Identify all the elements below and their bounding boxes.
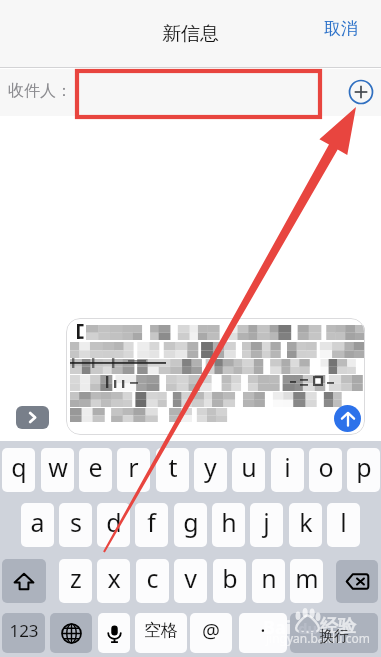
button[interactable]: y — [194, 448, 227, 492]
button[interactable]: i — [271, 448, 304, 492]
button[interactable]: u — [232, 448, 265, 492]
button[interactable]: g — [174, 503, 207, 547]
staticText: 新信息 — [162, 22, 219, 46]
staticText: 空格 — [144, 620, 178, 641]
staticText: 取消 — [324, 18, 358, 39]
staticText: i — [284, 450, 291, 484]
staticText: 123 — [9, 619, 39, 642]
staticText: du — [298, 618, 318, 638]
button[interactable]: r — [117, 448, 150, 492]
button[interactable]: z — [59, 559, 92, 603]
button[interactable]: x — [97, 559, 130, 603]
button[interactable]: t — [156, 448, 189, 492]
staticText: k — [299, 505, 313, 539]
staticText: g — [183, 505, 199, 539]
staticText: y — [204, 450, 217, 484]
button[interactable]: 取消 — [312, 12, 370, 45]
staticText: w — [48, 450, 68, 484]
staticText: s — [70, 505, 82, 539]
button[interactable]: @ — [190, 613, 232, 653]
button[interactable]: j — [250, 503, 283, 547]
button[interactable]: Add contact — [348, 79, 374, 105]
button[interactable]: d — [97, 503, 130, 547]
staticText: v — [184, 561, 197, 595]
button[interactable]: s — [59, 503, 92, 547]
staticText: n — [261, 561, 277, 595]
button[interactable]: c — [136, 559, 169, 603]
staticText: f — [147, 505, 156, 539]
staticText: m — [295, 561, 319, 595]
staticText: x — [107, 561, 121, 595]
button[interactable]: k — [289, 503, 322, 547]
button[interactable]: q — [2, 448, 35, 492]
button[interactable]: Switch keyboard — [50, 613, 92, 653]
staticText: c — [146, 561, 159, 595]
staticText: q — [11, 450, 27, 484]
button[interactable]: Backspace — [336, 560, 378, 603]
staticText: p — [356, 450, 372, 484]
button[interactable]: e — [79, 448, 112, 492]
button[interactable]: · — [239, 613, 287, 653]
button[interactable]: w — [41, 448, 74, 492]
staticText: a — [30, 505, 45, 539]
button[interactable]: m — [290, 559, 323, 603]
button[interactable]: b — [213, 559, 246, 603]
button[interactable]: Shift — [2, 559, 46, 603]
button[interactable]: a — [21, 503, 54, 547]
button[interactable]: l — [327, 503, 360, 547]
button[interactable]: n — [252, 559, 285, 603]
button[interactable]: o — [309, 448, 342, 492]
staticText: t — [168, 450, 178, 484]
staticText: j — [263, 505, 270, 539]
button[interactable]: Send — [334, 405, 361, 432]
staticText: 换行 — [319, 627, 349, 646]
button[interactable]: 空格 — [135, 613, 187, 653]
button[interactable]: v — [174, 559, 207, 603]
staticText: jingyan.baidu.com — [266, 630, 370, 646]
staticText: u — [241, 450, 257, 484]
staticText: z — [70, 561, 82, 595]
button[interactable]: Expand — [16, 406, 49, 429]
staticText: b — [222, 561, 238, 595]
staticText: 经验 — [320, 615, 356, 638]
staticText: l — [340, 505, 347, 539]
button[interactable]: Voice input — [98, 613, 130, 653]
staticText: @ — [202, 617, 220, 644]
button[interactable]: p — [347, 448, 380, 492]
staticText: r — [128, 450, 139, 484]
staticText: d — [106, 505, 122, 539]
staticText: h — [221, 505, 237, 539]
staticText: e — [88, 450, 103, 484]
button[interactable]: f — [135, 503, 168, 547]
button[interactable]: Return — [290, 613, 378, 653]
staticText: 收件人： — [8, 81, 72, 101]
staticText: Bai — [263, 615, 292, 640]
staticText: o — [318, 450, 334, 484]
button[interactable]: 123 — [2, 613, 45, 653]
staticText: · — [260, 617, 266, 644]
button[interactable]: h — [212, 503, 245, 547]
